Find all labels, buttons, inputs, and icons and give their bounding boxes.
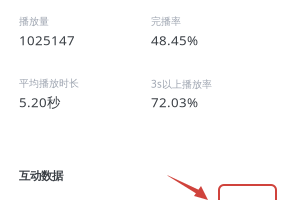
staticText: 72.03% xyxy=(151,93,198,111)
staticText: 1025147 xyxy=(19,31,75,49)
button[interactable]: 平均播放时长 xyxy=(19,77,143,113)
button[interactable]: 3s以上播放率 xyxy=(151,77,275,113)
staticText: 互动数据 xyxy=(19,169,63,183)
button[interactable]: 互动数据 xyxy=(19,169,79,183)
staticText: 5.20秒 xyxy=(19,93,60,111)
staticText: 完播率 xyxy=(151,15,181,28)
staticText: 播放量 xyxy=(19,15,49,28)
staticText: 3s以上播放率 xyxy=(151,77,212,91)
button[interactable]: 完播率 xyxy=(151,15,275,51)
staticText: 平均播放时长 xyxy=(19,77,79,90)
button[interactable]: 播放量 xyxy=(19,15,143,51)
staticText: 48.45% xyxy=(151,31,198,49)
